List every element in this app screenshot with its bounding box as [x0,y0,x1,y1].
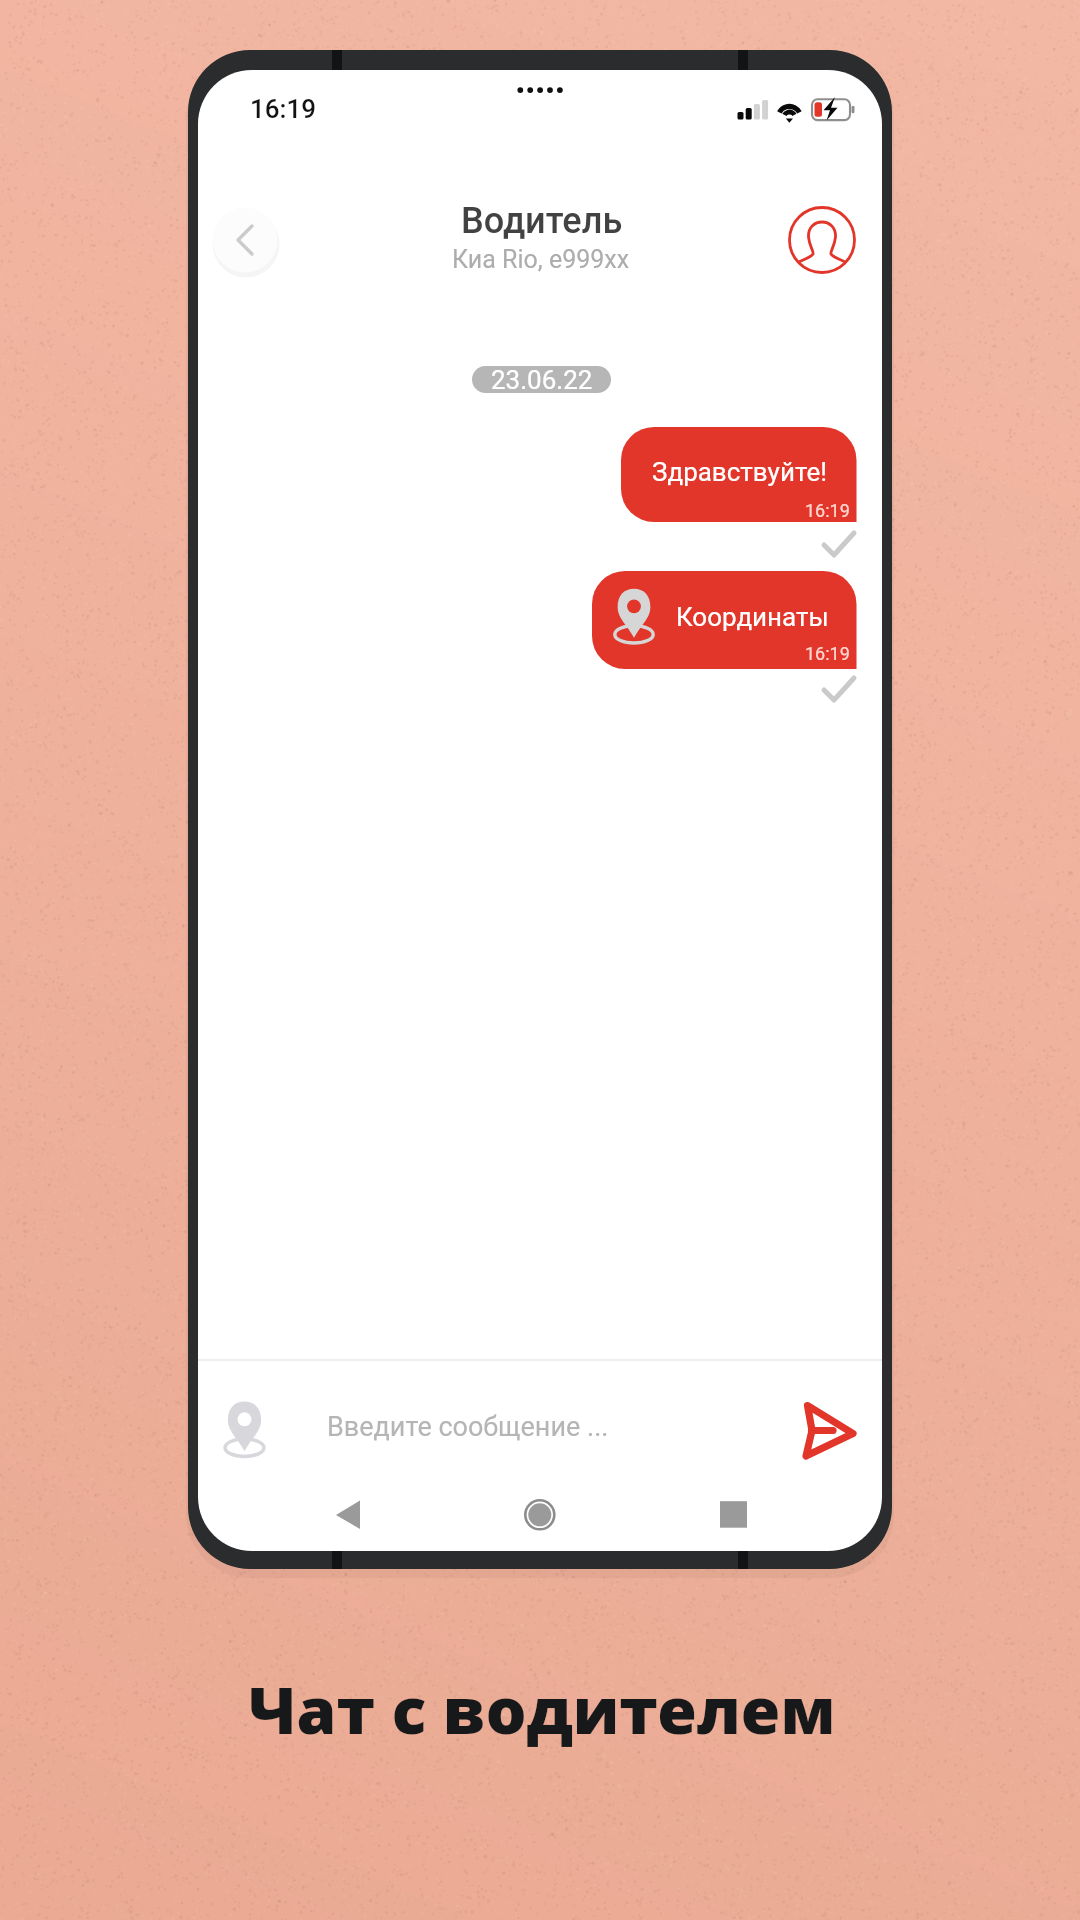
button[interactable]: Send [795,1396,861,1462]
button[interactable]: Home [510,1485,570,1545]
staticText: Чат с водителем [248,1666,836,1753]
button[interactable]: Back [215,210,275,270]
staticText: Введите сообщение ... [327,1411,609,1443]
button[interactable]: Message input [300,1385,780,1471]
staticText: Водитель [461,200,623,242]
staticText: Координаты [676,602,829,632]
button[interactable]: Attach location [215,1390,271,1446]
staticText: 16:19 [805,643,850,664]
staticText: 23.06.22 [491,365,593,395]
staticText: 16:19 [250,94,317,124]
button[interactable]: Driver profile [789,207,855,273]
button[interactable]: Recent apps [704,1485,764,1545]
button[interactable]: Navigate back [320,1485,380,1545]
staticText: Киа Rio, e999xx [452,245,630,274]
staticText: Здравствуйте! [652,457,827,487]
staticText: 16:19 [805,500,850,521]
